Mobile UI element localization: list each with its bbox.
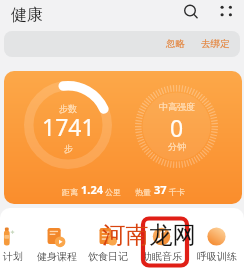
staticText: 0 [170,112,184,143]
staticText: 饮食日记 [88,250,128,263]
button[interactable]: 呼吸训练 [193,219,241,263]
staticText: 健身课程 [37,250,77,263]
button[interactable]: 计划 [0,219,37,263]
staticText: 步 [64,143,73,154]
staticText: 去绑定 [201,38,230,50]
staticText: 公里 [105,187,121,197]
button[interactable]: Search [178,0,203,25]
button[interactable]: 忽略 [164,31,187,57]
staticText: 分钟 [168,141,186,152]
staticText: 健康 [11,5,43,25]
button[interactable]: More options [214,0,239,25]
staticText: 龙网 [149,220,196,250]
staticText: 步数 [59,103,77,114]
button[interactable]: 健身课程 [33,219,81,263]
button[interactable]: 去绑定 [199,31,232,57]
staticText: 千卡 [169,187,185,197]
button[interactable]: 助眠音乐 [138,219,186,263]
staticText: 忽略 [166,38,185,50]
button[interactable]: 步数 [4,71,242,204]
staticText: 37 [154,182,167,197]
staticText: 河南 [102,220,149,250]
staticText: 1741 [42,111,95,142]
staticText: 距离 [62,187,78,197]
staticText: 热量 [135,187,151,197]
button[interactable]: 饮食日记 [84,219,132,263]
staticText: 呼吸训练 [197,250,237,263]
staticText: 1.24 [81,182,103,197]
staticText: 中高强度 [159,101,195,112]
staticText: 助眠音乐 [142,250,182,263]
staticText: 计划 [3,250,23,263]
